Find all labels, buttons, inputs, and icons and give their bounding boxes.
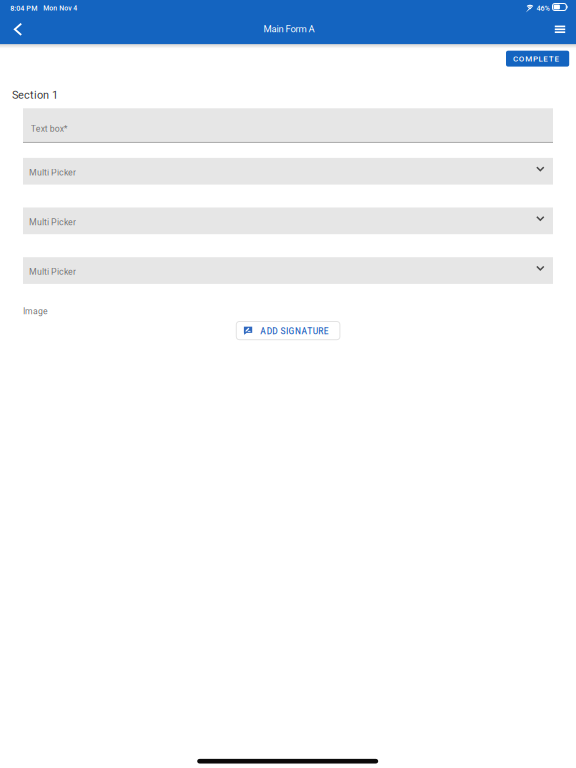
staticText: ADD SIGNATURE [260, 326, 331, 336]
button[interactable]: ADD SIGNATURE [236, 321, 340, 340]
staticText: Multi Picker [29, 167, 76, 178]
button[interactable]: Menu [545, 14, 575, 44]
button[interactable]: Multi Picker [23, 257, 553, 284]
staticText: 8:04 PM [10, 4, 37, 12]
button[interactable]: Multi Picker [23, 207, 553, 234]
staticText: Section 1 [12, 89, 58, 101]
staticText: Multi Picker [29, 267, 76, 277]
staticText: Image [23, 306, 48, 316]
staticText: Main Form A [264, 23, 315, 34]
button[interactable]: COMPLETE [506, 51, 569, 67]
staticText: Text box* [31, 124, 68, 134]
button[interactable]: Back [3, 14, 33, 44]
staticText: 46% [537, 4, 550, 12]
staticText: Multi Picker [29, 217, 76, 227]
button[interactable]: Multi Picker [23, 158, 553, 185]
staticText: Mon Nov 4 [43, 4, 77, 12]
staticText: COMPLETE [513, 54, 562, 63]
